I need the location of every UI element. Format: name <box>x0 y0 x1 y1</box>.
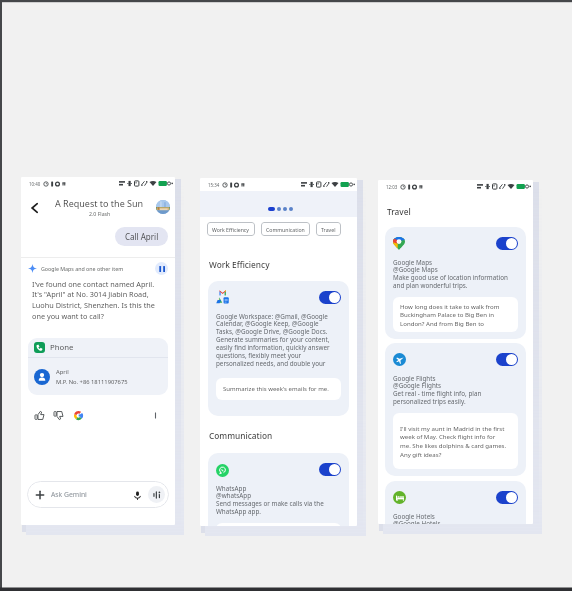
button[interactable]: Good response <box>33 409 46 422</box>
button[interactable]: Toggle <box>208 281 349 416</box>
staticText: Work Efficiency <box>209 259 270 270</box>
button[interactable]: Summarize this week's emails for me. <box>216 378 341 400</box>
button[interactable]: Toggle <box>208 453 349 526</box>
button[interactable]: Toggle <box>319 291 341 304</box>
staticText: How long does it take to walk from Bucki… <box>400 302 500 328</box>
staticText: 12:03 <box>386 184 398 190</box>
staticText: 15:34 <box>208 182 220 188</box>
staticText: M.P. No. +86 18111907675 <box>56 378 128 386</box>
button[interactable]: Communication <box>261 222 310 236</box>
staticText: A Request to the Sun <box>55 197 144 209</box>
button[interactable]: Phone <box>28 338 168 395</box>
button[interactable]: Toggle <box>385 343 526 476</box>
staticText: Phone <box>50 342 74 353</box>
button[interactable]: Toggle <box>496 491 518 504</box>
staticText: 10:40 <box>29 181 41 187</box>
button[interactable]: How long does it take to walk from Bucki… <box>393 297 518 332</box>
staticText: Communication <box>209 430 273 441</box>
button[interactable]: Back <box>26 199 43 216</box>
staticText: Google Maps @Google Maps Make good use o… <box>393 258 508 290</box>
button[interactable]: Toggle <box>319 463 341 476</box>
staticText: Google Hotels @Google Hotels Find and co… <box>393 512 498 524</box>
button[interactable]: Work Efficiency <box>207 222 255 236</box>
staticText: April <box>56 368 69 376</box>
staticText: WhatsApp @whatsApp Send messages or make… <box>216 484 324 516</box>
button[interactable]: I'll visit my aunt in Madrid in the firs… <box>393 413 518 469</box>
button[interactable]: Toggle <box>496 353 518 366</box>
staticText: Google Maps and one other item <box>41 265 124 272</box>
staticText: Summarize this week's emails for me. <box>223 385 329 393</box>
button[interactable]: More options <box>149 409 161 421</box>
button[interactable]: Gemini Live <box>148 486 165 503</box>
staticText: Call April <box>125 231 159 242</box>
staticText: Travel <box>387 206 411 217</box>
staticText: 2.0 Flash <box>89 210 111 217</box>
button[interactable]: Ask Gemini <box>27 481 169 508</box>
button[interactable]: Toggle <box>496 237 518 250</box>
staticText: Work Efficiency <box>212 226 250 233</box>
button[interactable]: Search with Google <box>72 409 85 422</box>
staticText: Communication <box>266 226 305 233</box>
button[interactable]: Bad response <box>52 409 65 422</box>
button[interactable]: Toggle <box>385 481 526 524</box>
staticText: Ask Gemini <box>51 490 87 499</box>
button[interactable]: Pause <box>155 262 168 275</box>
button[interactable]: Profile <box>156 200 170 214</box>
button[interactable]: Toggle <box>385 227 526 339</box>
staticText: I've found one contact named April. It's… <box>32 279 155 321</box>
button[interactable]: Travel <box>316 222 341 236</box>
button[interactable]: Voice input <box>131 489 143 501</box>
staticText: Google Flights @Google Flights Get real … <box>393 374 482 406</box>
staticText: Google Workspace: @Gmail, @Google Calend… <box>216 312 330 368</box>
staticText: Travel <box>321 226 336 233</box>
staticText: I'll visit my aunt in Madrid in the firs… <box>400 424 507 459</box>
button[interactable]: Call April <box>115 227 168 246</box>
